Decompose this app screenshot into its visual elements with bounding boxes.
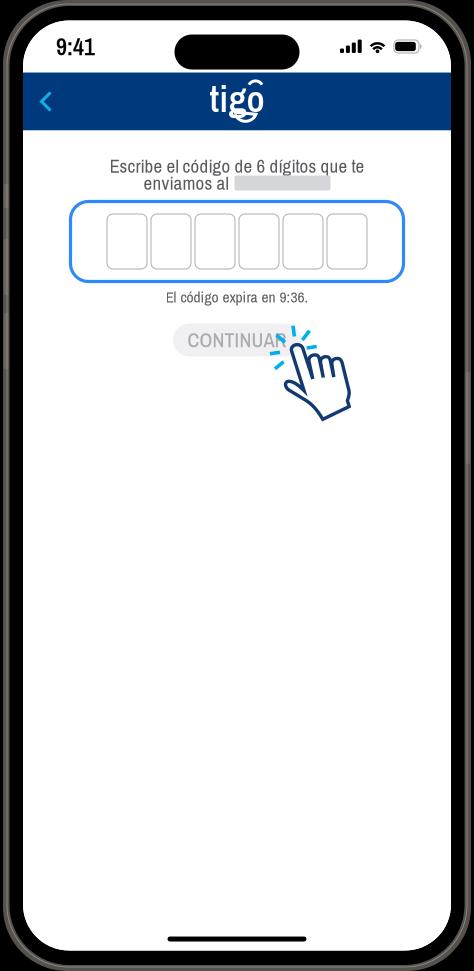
button[interactable]: CONTINUAR	[173, 323, 301, 356]
staticText: enviamos al	[143, 170, 228, 196]
staticText: 9:41	[56, 30, 95, 63]
staticText: El código expira en 9:36.	[165, 287, 308, 307]
button[interactable]: Back	[23, 72, 69, 130]
staticText: CONTINUAR	[187, 326, 286, 353]
staticText: Escribe el código de 6 dígitos que te	[109, 153, 364, 179]
staticText: tigo	[209, 73, 264, 124]
